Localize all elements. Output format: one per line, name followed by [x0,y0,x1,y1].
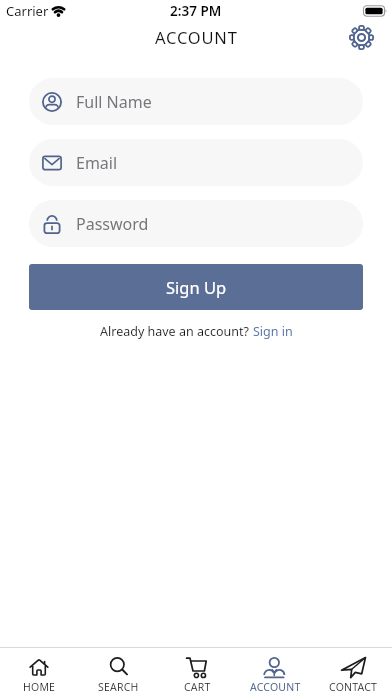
staticText: Carrier [6,2,49,20]
button[interactable]: Password [29,200,363,247]
button[interactable]: CONTACT [314,648,392,696]
button[interactable]: Sign Up [29,264,363,310]
staticText: Full Name [76,91,152,113]
button[interactable]: Sign in [253,323,293,340]
staticText: CART [184,680,211,694]
button[interactable]: ACCOUNT [236,648,314,696]
button[interactable]: Full Name [29,78,363,125]
staticText: Email [76,152,118,174]
button[interactable]: CART [158,648,236,696]
staticText: Already have an account? [100,323,253,340]
button[interactable]: SEARCH [79,648,158,696]
button[interactable]: HOME [0,648,79,696]
staticText: HOME [23,680,56,694]
staticText: 2:37 PM [170,2,222,20]
staticText: Password [76,213,149,235]
staticText: SEARCH [98,680,139,694]
staticText: ACCOUNT [250,680,301,694]
button[interactable] [350,26,373,49]
staticText: ACCOUNT [155,26,238,48]
staticText: Sign Up [166,276,227,298]
staticText: Sign in [253,323,293,340]
button[interactable]: Email [29,139,363,186]
staticText: CONTACT [329,680,378,694]
